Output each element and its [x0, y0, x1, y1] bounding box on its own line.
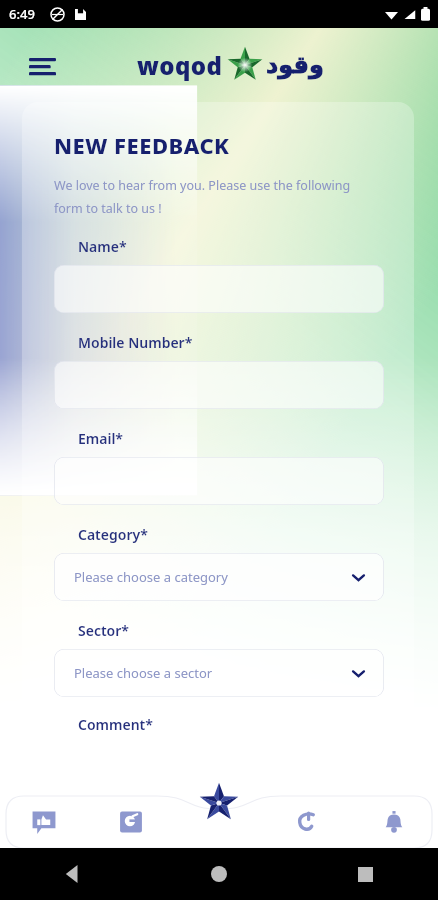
staticText: form to talk to us !: [54, 200, 162, 217]
staticText: Mobile Number*: [78, 333, 193, 352]
staticText: Comment*: [78, 715, 153, 734]
staticText: We love to hear from you. Please use the…: [54, 177, 351, 194]
button[interactable]: Notifications: [350, 796, 438, 848]
button[interactable]: Please choose a sector: [54, 649, 384, 697]
button[interactable]: [54, 457, 384, 505]
button[interactable]: Home: [198, 782, 240, 824]
button[interactable]: [54, 361, 384, 409]
staticText: NEW FEEDBACK: [54, 130, 230, 160]
staticText: Category*: [78, 525, 148, 544]
button[interactable]: e-Services: [87, 796, 174, 848]
staticText: woqod: [137, 49, 223, 82]
staticText: Please choose a category: [74, 568, 228, 586]
button[interactable]: [54, 265, 384, 313]
button[interactable]: Please choose a category: [54, 553, 384, 601]
button[interactable]: Arabic: [262, 796, 350, 848]
staticText: Sector*: [78, 621, 129, 640]
staticText: وقود: [266, 51, 324, 79]
staticText: Email*: [78, 429, 124, 448]
button[interactable]: Feedback: [0, 796, 87, 848]
staticText: Please choose a sector: [74, 664, 213, 682]
button[interactable]: Open navigation menu: [20, 43, 64, 87]
staticText: 6:49: [9, 5, 35, 23]
staticText: Name*: [78, 237, 127, 256]
